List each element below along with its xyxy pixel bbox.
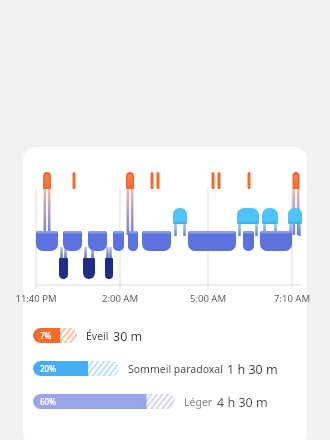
button[interactable]: 20% (33, 361, 278, 376)
staticText: 7% (40, 330, 52, 341)
button[interactable] (23, 147, 307, 440)
staticText: 4 h 30 m (217, 394, 268, 409)
staticText: 11:40 PM (6, 292, 66, 305)
staticText: 30 m (113, 328, 143, 343)
button[interactable]: 60% (33, 394, 268, 409)
staticText: 7:10 AM (262, 292, 322, 305)
staticText: Éveil (86, 329, 109, 343)
staticText: Sommeil paradoxal (128, 362, 223, 376)
staticText: 60% (40, 396, 56, 407)
staticText: Léger (184, 395, 213, 409)
staticText: 2:00 AM (90, 292, 150, 305)
staticText: 20% (40, 363, 56, 374)
button[interactable]: 7% (33, 328, 143, 343)
staticText: 5:00 AM (178, 292, 238, 305)
staticText: 1 h 30 m (227, 361, 278, 376)
